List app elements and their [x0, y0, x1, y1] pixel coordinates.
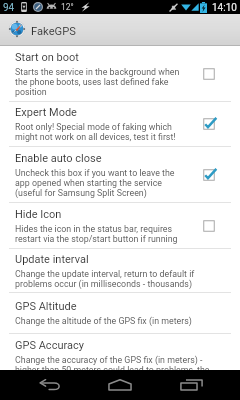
staticText: GPS Accuracy [15, 339, 84, 352]
button[interactable]: FakeGPS [0, 14, 240, 46]
staticText: Root only! Special mode of faking which … [15, 122, 187, 142]
staticText: Update interval [15, 253, 89, 266]
staticText: Hide Icon [15, 208, 62, 221]
staticText: Enable auto close [15, 152, 102, 165]
button[interactable]: Hide Icon [0, 203, 240, 248]
staticText: Change the update interval, return to de… [15, 269, 211, 289]
staticText: 14:10 [212, 2, 237, 14]
staticText: Starts the service in the background whe… [15, 67, 187, 97]
staticText: FakeGPS [31, 25, 76, 38]
button[interactable]: Back [30, 370, 70, 400]
button[interactable]: Expert Mode [0, 102, 240, 146]
button[interactable]: Update interval [0, 249, 240, 292]
staticText: Expert Mode [15, 106, 77, 119]
staticText: Hides the icon in the status bar, requir… [15, 224, 187, 244]
staticText: 94 [3, 2, 15, 14]
button[interactable]: GPS Accuracy [0, 334, 240, 379]
button[interactable]: Hide Icon [196, 214, 222, 238]
staticText: Uncheck this box if you want to leave th… [15, 168, 187, 198]
button[interactable]: Enable auto close [0, 147, 240, 202]
staticText: 12° [61, 2, 74, 12]
staticText: Start on boot [15, 51, 79, 64]
button[interactable]: Start on boot [196, 62, 222, 86]
button[interactable]: Start on boot [0, 46, 240, 101]
button[interactable]: Recent apps [171, 370, 211, 400]
button[interactable]: Expert Mode [196, 112, 222, 136]
staticText: Change the accuracy of the GPS fix (in m… [15, 355, 211, 375]
staticText: GPS Altitude [15, 300, 77, 313]
button[interactable]: Enable auto close [196, 163, 222, 187]
button[interactable]: GPS Altitude [0, 293, 240, 333]
staticText: Change the altitude of the GPS fix (in m… [15, 316, 192, 326]
button[interactable]: Home [100, 370, 140, 400]
